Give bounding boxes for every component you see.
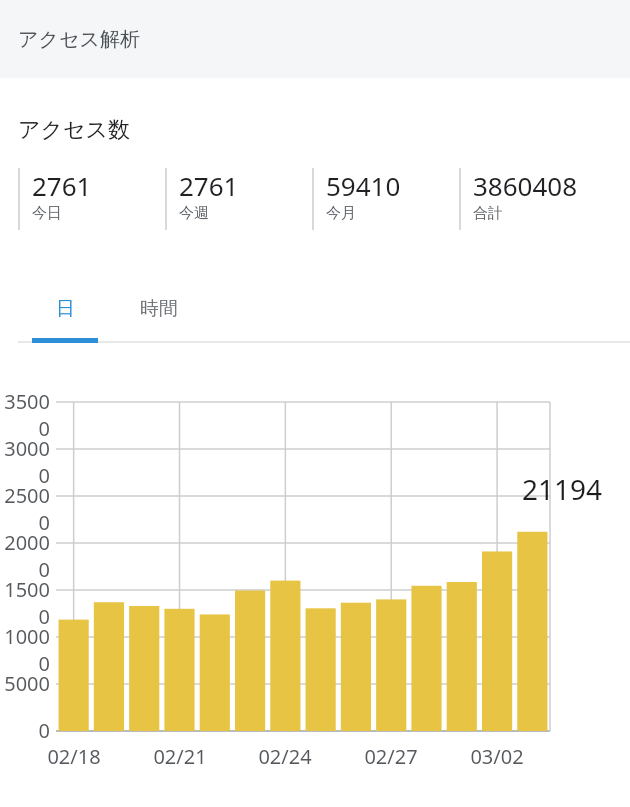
- staticText: 21194: [462, 470, 602, 508]
- staticText: 2761: [179, 168, 239, 203]
- button[interactable]: 59410: [312, 168, 459, 232]
- button[interactable]: 2761: [18, 168, 165, 232]
- staticText: 2761: [32, 168, 92, 203]
- staticText: 02/27: [346, 743, 436, 770]
- staticText: 合計: [473, 204, 503, 223]
- staticText: 3860408: [473, 168, 578, 203]
- staticText: 20000: [0, 529, 50, 583]
- staticText: 今月: [326, 204, 356, 223]
- staticText: 35000: [0, 388, 50, 442]
- staticText: 今週: [179, 204, 209, 223]
- staticText: 59410: [326, 168, 401, 203]
- staticText: 30000: [0, 435, 50, 489]
- staticText: 今日: [32, 204, 62, 223]
- staticText: 5000: [0, 670, 50, 697]
- staticText: 15000: [0, 576, 50, 630]
- staticText: 25000: [0, 482, 50, 536]
- staticText: アクセス解析: [18, 27, 140, 52]
- staticText: 02/21: [135, 743, 225, 770]
- button[interactable]: 2761: [165, 168, 312, 232]
- button[interactable]: 日: [18, 280, 112, 338]
- button[interactable]: 3860408: [459, 168, 606, 232]
- staticText: 10000: [0, 623, 50, 677]
- button[interactable]: 時間: [112, 280, 206, 338]
- staticText: 02/24: [240, 743, 330, 770]
- staticText: 日: [56, 297, 75, 321]
- staticText: アクセス数: [18, 116, 131, 144]
- staticText: 02/18: [29, 743, 119, 770]
- staticText: 0: [0, 717, 50, 744]
- staticText: 03/02: [452, 743, 542, 770]
- staticText: 時間: [140, 297, 178, 321]
